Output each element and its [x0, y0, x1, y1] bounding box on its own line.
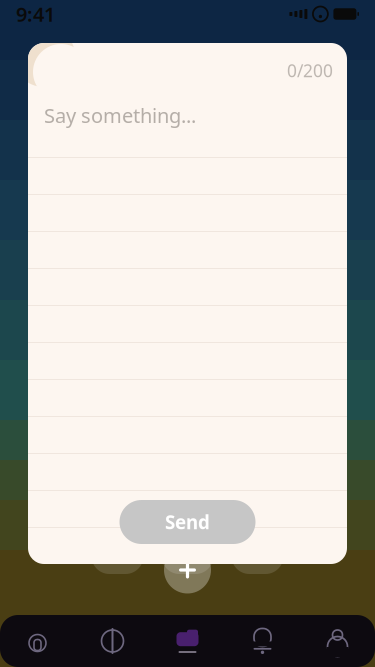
- button[interactable]: Close: [164, 546, 211, 593]
- button[interactable]: Compose: [150, 615, 225, 667]
- button[interactable]: Send to inbox: [231, 522, 283, 574]
- button[interactable]: Trending: [0, 615, 75, 667]
- button[interactable]: Write a note: [91, 522, 143, 574]
- staticText: Say something...: [44, 102, 196, 129]
- button[interactable]: Discover: [75, 615, 150, 667]
- staticText: 9:41: [16, 1, 55, 27]
- button[interactable]: Notifications: [225, 615, 300, 667]
- button[interactable]: Profile: [300, 615, 375, 667]
- button[interactable]: Send: [119, 500, 255, 544]
- staticText: 0/200: [287, 59, 333, 82]
- button[interactable]: Share publicly: [161, 522, 213, 574]
- staticText: Send: [165, 510, 210, 534]
